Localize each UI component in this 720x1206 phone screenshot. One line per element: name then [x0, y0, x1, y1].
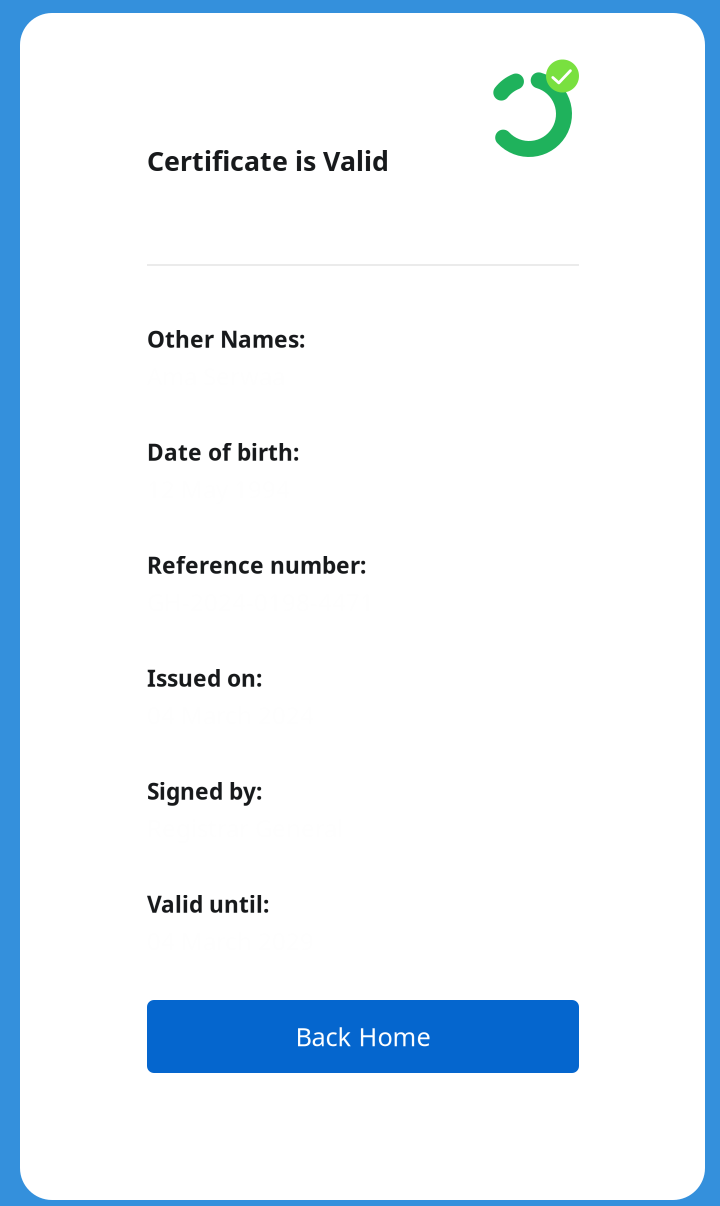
staticText: Issued on:	[147, 663, 262, 693]
staticText: Back Home	[295, 1020, 430, 1053]
staticText: Date of birth:	[147, 437, 299, 467]
staticText: Valid until:	[147, 889, 269, 919]
staticText: Certificate is Valid	[147, 143, 389, 178]
button[interactable]: Back Home	[147, 1000, 579, 1073]
staticText: Other Names:	[147, 324, 305, 354]
staticText: Signed by:	[147, 776, 262, 806]
staticText: Reference number:	[147, 550, 366, 580]
